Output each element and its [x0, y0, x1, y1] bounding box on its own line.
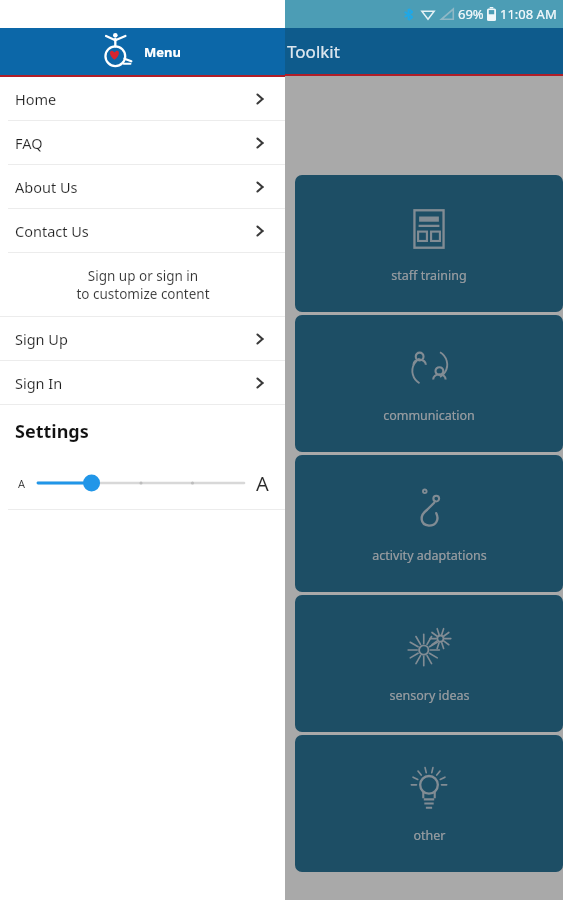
staticText: other	[413, 827, 446, 844]
staticText: Welcome!	[24, 95, 107, 118]
button[interactable]: Contact Us	[0, 209, 285, 252]
button[interactable]: Home	[0, 77, 285, 120]
staticText: activity adaptations	[372, 547, 487, 564]
button[interactable]: FAQ	[0, 121, 285, 164]
button[interactable]: Sign In	[0, 361, 285, 404]
button[interactable]: About Us	[0, 165, 285, 208]
staticText: A	[18, 476, 26, 491]
staticText: FAQ	[15, 133, 43, 153]
staticText: intro	[24, 137, 56, 156]
staticText: Sign In	[15, 373, 63, 393]
staticText: staff training	[391, 267, 467, 284]
button[interactable]: staff training	[295, 175, 563, 312]
button[interactable]: Sign Up	[0, 317, 285, 360]
staticText: Home	[15, 89, 57, 109]
staticText: About Us	[15, 177, 78, 197]
staticText: communication	[383, 407, 475, 424]
button[interactable]: Menu	[0, 28, 285, 75]
staticText: Contact Us	[15, 221, 89, 241]
staticText: Settings	[15, 419, 89, 444]
button[interactable]: communication	[295, 315, 563, 452]
button[interactable]: Font size	[38, 467, 244, 499]
button[interactable]: equipment	[17, 455, 285, 592]
button[interactable]: meeting	[17, 315, 285, 452]
staticText: 11:08 AM	[500, 5, 557, 23]
staticText: A	[256, 470, 269, 497]
staticText: specific physical ability	[104, 259, 198, 293]
button[interactable]: sensory ideas	[295, 595, 563, 732]
button[interactable]: activity adaptations	[295, 455, 563, 592]
staticText: Inclusion Toolkit	[210, 40, 340, 63]
staticText: Sign up or sign in to customize content	[76, 267, 210, 303]
staticText: Menu	[144, 43, 181, 61]
button[interactable]: other	[295, 735, 563, 872]
staticText: 69%	[458, 5, 484, 23]
staticText: sensory ideas	[389, 687, 470, 704]
staticText: Sign Up	[15, 329, 68, 349]
button[interactable]: specific physical ability	[17, 175, 285, 312]
